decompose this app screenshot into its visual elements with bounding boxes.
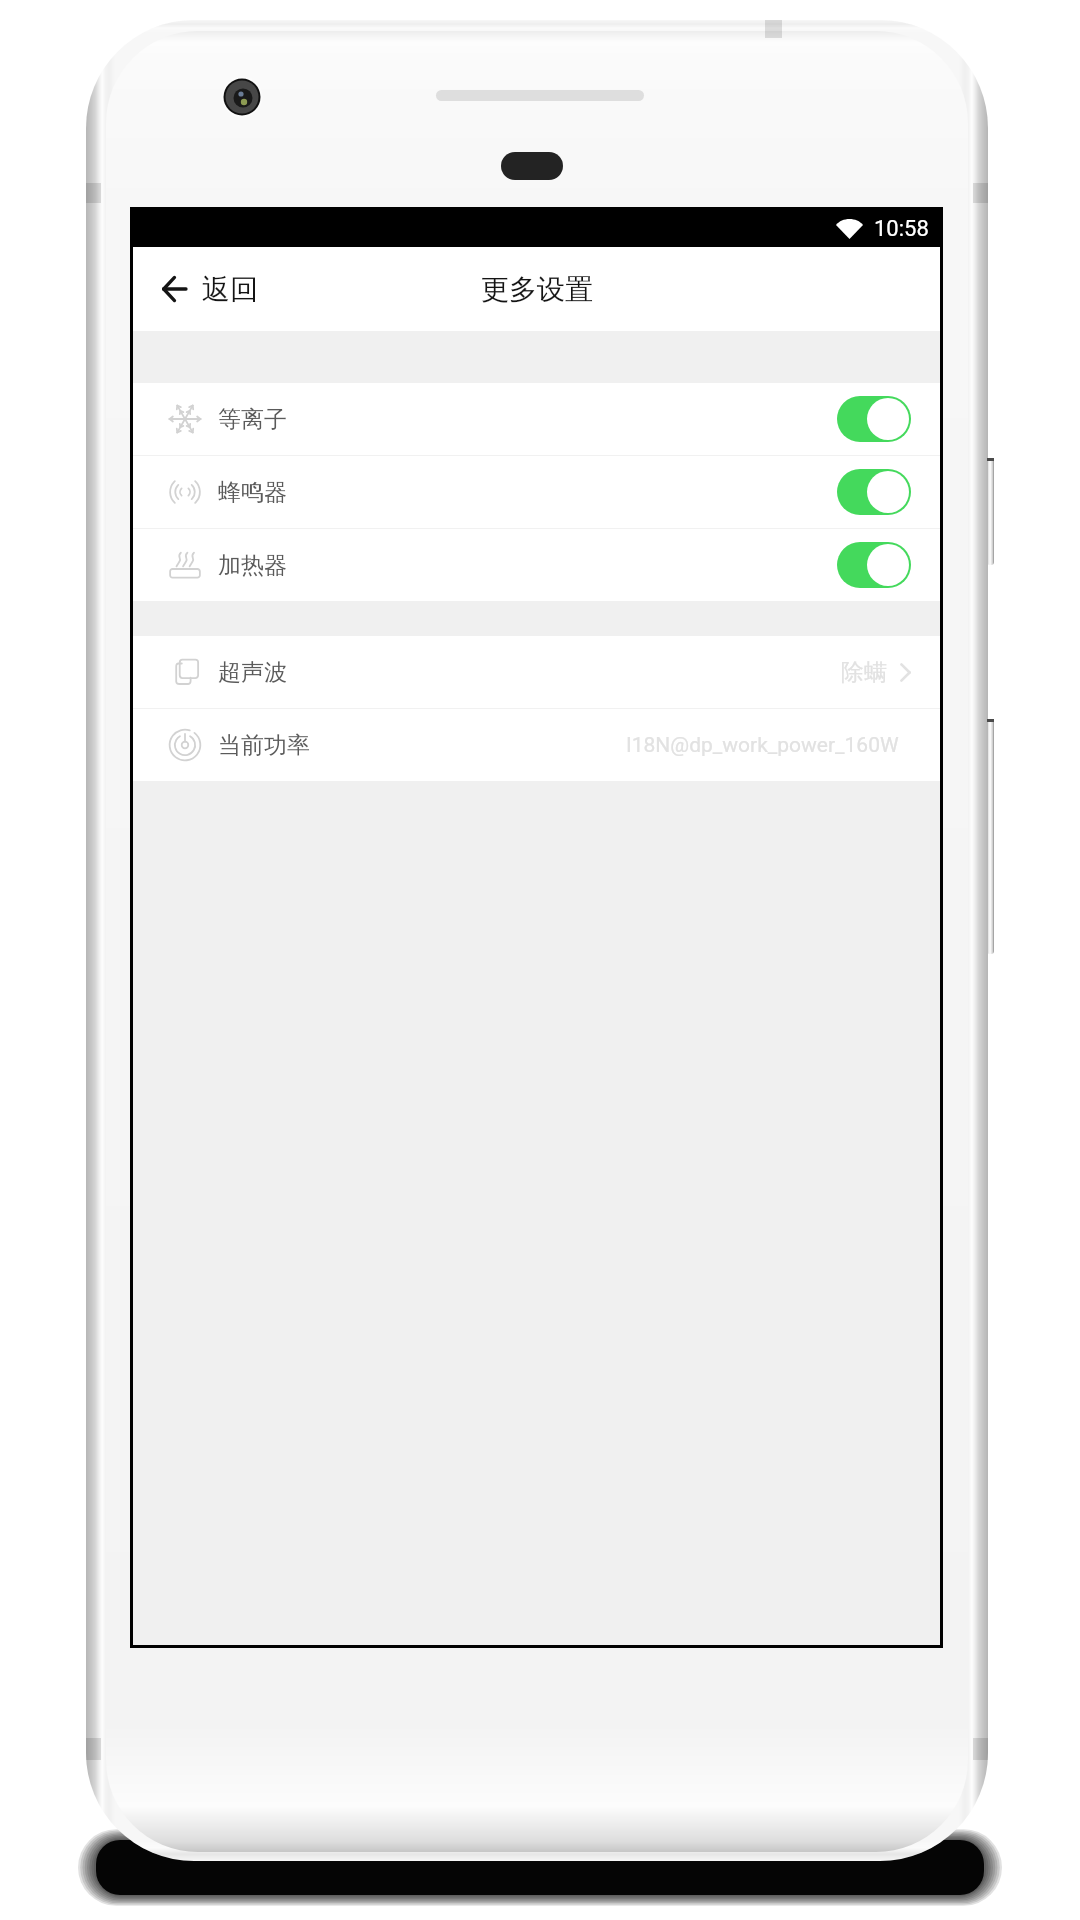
staticText: I18N@dp_work_power_160W: [626, 733, 899, 758]
button[interactable]: 蜂鸣器: [133, 456, 940, 528]
staticText: 除螨: [841, 658, 887, 687]
staticText: 超声波: [218, 658, 287, 687]
button[interactable]: 超声波: [133, 636, 940, 708]
button[interactable]: Toggle: [837, 396, 911, 442]
button[interactable]: 当前功率: [133, 709, 940, 781]
staticText: 蜂鸣器: [218, 478, 287, 507]
staticText: 10:58: [874, 216, 929, 242]
staticText: 加热器: [218, 551, 287, 580]
staticText: 返回: [202, 272, 258, 307]
other: Wi-Fi: [836, 219, 863, 239]
button[interactable]: 等离子: [133, 383, 940, 455]
staticText: 等离子: [218, 405, 287, 434]
button[interactable]: Toggle: [837, 542, 911, 588]
other: Back: [162, 277, 187, 301]
button[interactable]: Toggle: [837, 469, 911, 515]
staticText: 当前功率: [218, 731, 310, 760]
button[interactable]: Back: [133, 247, 282, 331]
button[interactable]: 加热器: [133, 529, 940, 601]
staticText: 更多设置: [481, 272, 593, 307]
